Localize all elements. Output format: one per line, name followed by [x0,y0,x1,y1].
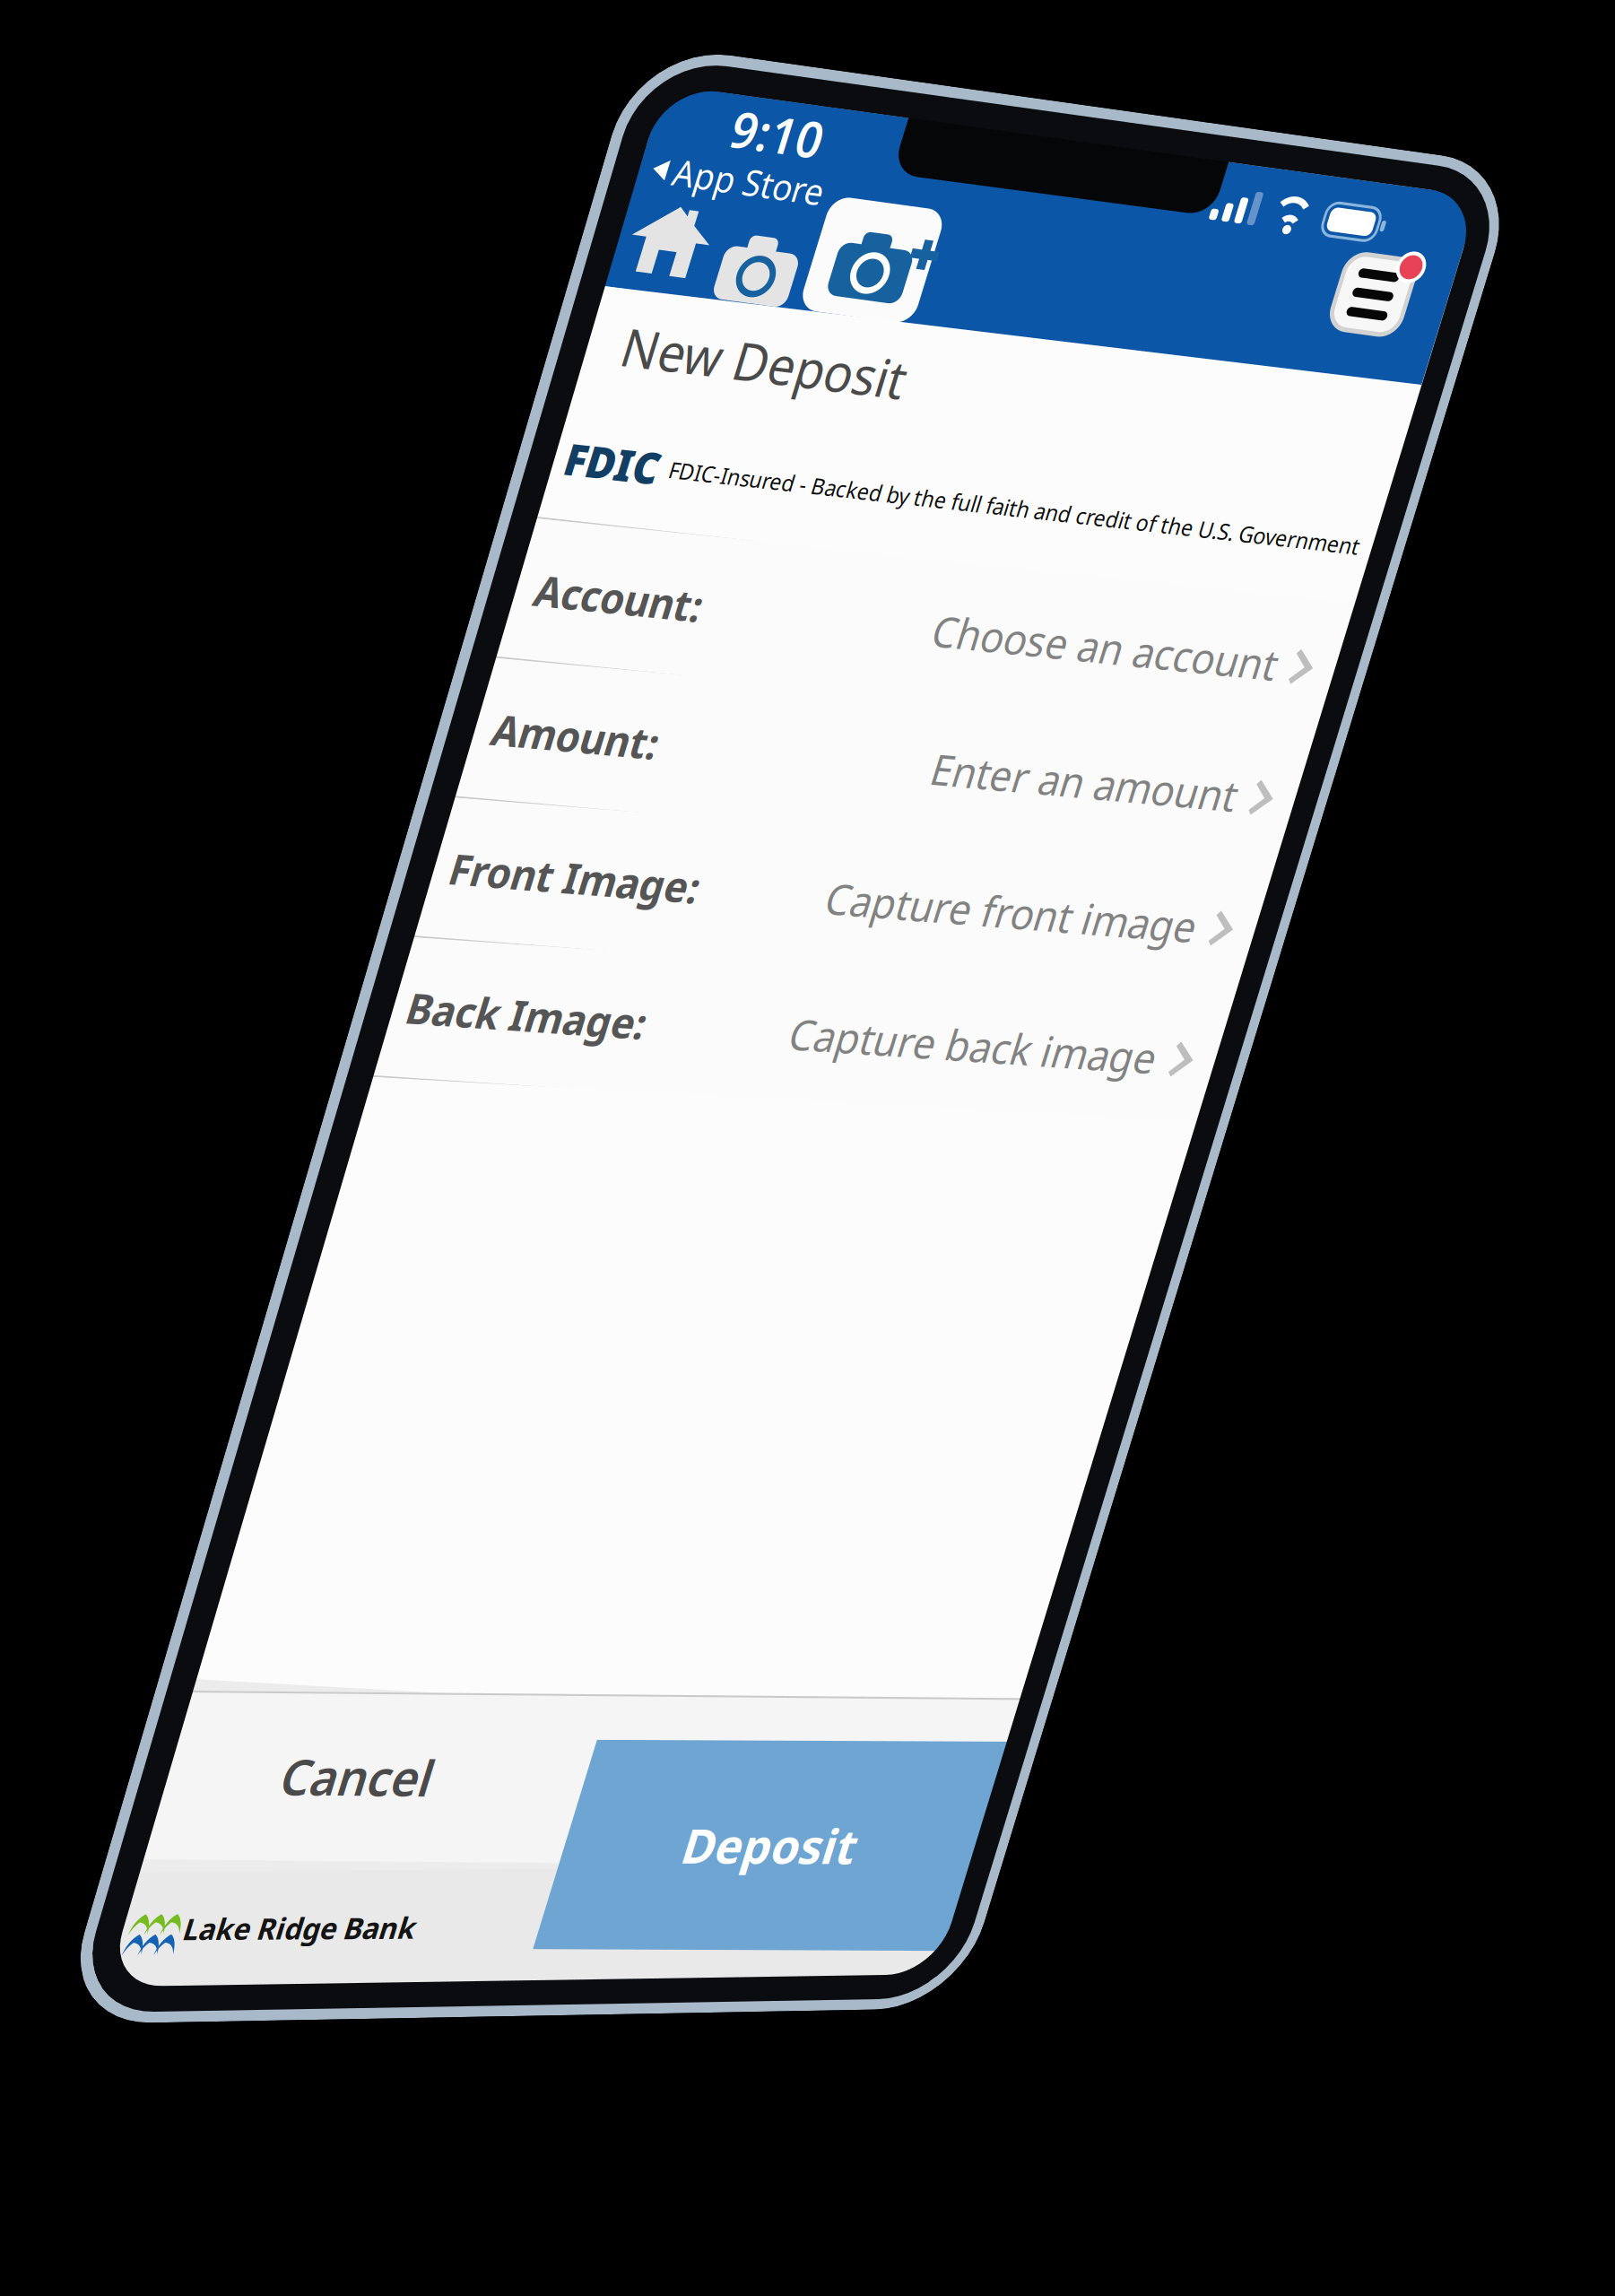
button[interactable]: Back Image: [0,0,868,136]
staticText: Enter an amount [488,40,808,94]
button[interactable]: Cancel [0,12,868,176]
staticText: Choose an account [446,40,808,94]
staticText: Capture front image [421,40,808,94]
button[interactable]: Messages [750,59,838,145]
staticText: FDIC-Insured - Backed by the full faith … [126,44,855,73]
staticText: Capture back image [426,40,808,94]
button[interactable]: Amount: [0,0,868,136]
button[interactable]: Front Image: [0,0,868,136]
button[interactable]: Account: [0,0,868,136]
